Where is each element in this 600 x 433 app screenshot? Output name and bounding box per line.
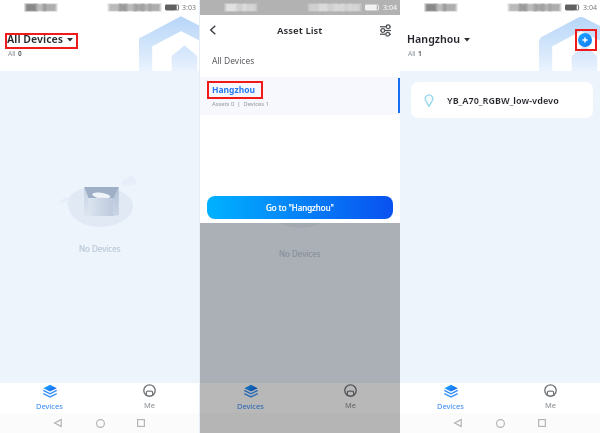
button[interactable]: Home	[492, 415, 508, 431]
button[interactable]: Me	[500, 383, 600, 413]
button[interactable]: Home	[92, 415, 108, 431]
staticText: No Devices	[79, 243, 121, 254]
staticText: Hangzhou	[212, 84, 256, 96]
staticText: Hangzhou	[407, 32, 461, 46]
staticText: Devices	[36, 401, 63, 411]
staticText: 3:04	[583, 3, 597, 13]
staticText: No Devices	[279, 248, 321, 259]
button[interactable]: Go to "Hangzhou"	[207, 196, 393, 219]
staticText: Me	[345, 400, 357, 410]
button[interactable]: Back	[202, 19, 224, 41]
button[interactable]: Devices	[200, 383, 300, 413]
staticText: Me	[545, 400, 557, 410]
button[interactable]: All Devices	[200, 45, 400, 77]
staticText: All	[8, 49, 18, 58]
button[interactable]: Back	[50, 415, 66, 431]
staticText: Go to "Hangzhou"	[266, 202, 334, 213]
button[interactable]: Recents	[133, 415, 149, 431]
button[interactable]: Me	[300, 383, 400, 413]
button[interactable]: Me	[99, 383, 199, 413]
button[interactable]: Hangzhou	[407, 32, 470, 46]
button[interactable]: All Devices	[7, 32, 73, 46]
staticText: All	[408, 49, 418, 58]
staticText: All Devices	[212, 55, 255, 67]
button[interactable]: Hangzhou	[200, 77, 400, 115]
button[interactable]: Filter	[375, 20, 395, 40]
staticText: 3:03	[182, 3, 196, 13]
button[interactable]: Devices	[400, 383, 500, 413]
button[interactable]: Back	[450, 415, 466, 431]
staticText: Asset List	[277, 24, 323, 37]
staticText: Devices	[237, 401, 264, 411]
button[interactable]: Recents	[534, 415, 550, 431]
staticText: 0	[18, 49, 22, 58]
staticText: 1	[418, 49, 422, 58]
button[interactable]: YB_A70_RGBW_low-vdevo	[411, 82, 593, 118]
staticText: All Devices	[7, 32, 64, 46]
button[interactable]: Add device	[578, 33, 592, 47]
staticText: YB_A70_RGBW_low-vdevo	[447, 94, 559, 106]
button[interactable]: Devices	[0, 383, 99, 413]
staticText: 3:04	[383, 3, 397, 13]
staticText: Me	[144, 400, 156, 410]
staticText: Assets 0 | Devices 1	[212, 100, 269, 108]
staticText: Devices	[437, 401, 464, 411]
